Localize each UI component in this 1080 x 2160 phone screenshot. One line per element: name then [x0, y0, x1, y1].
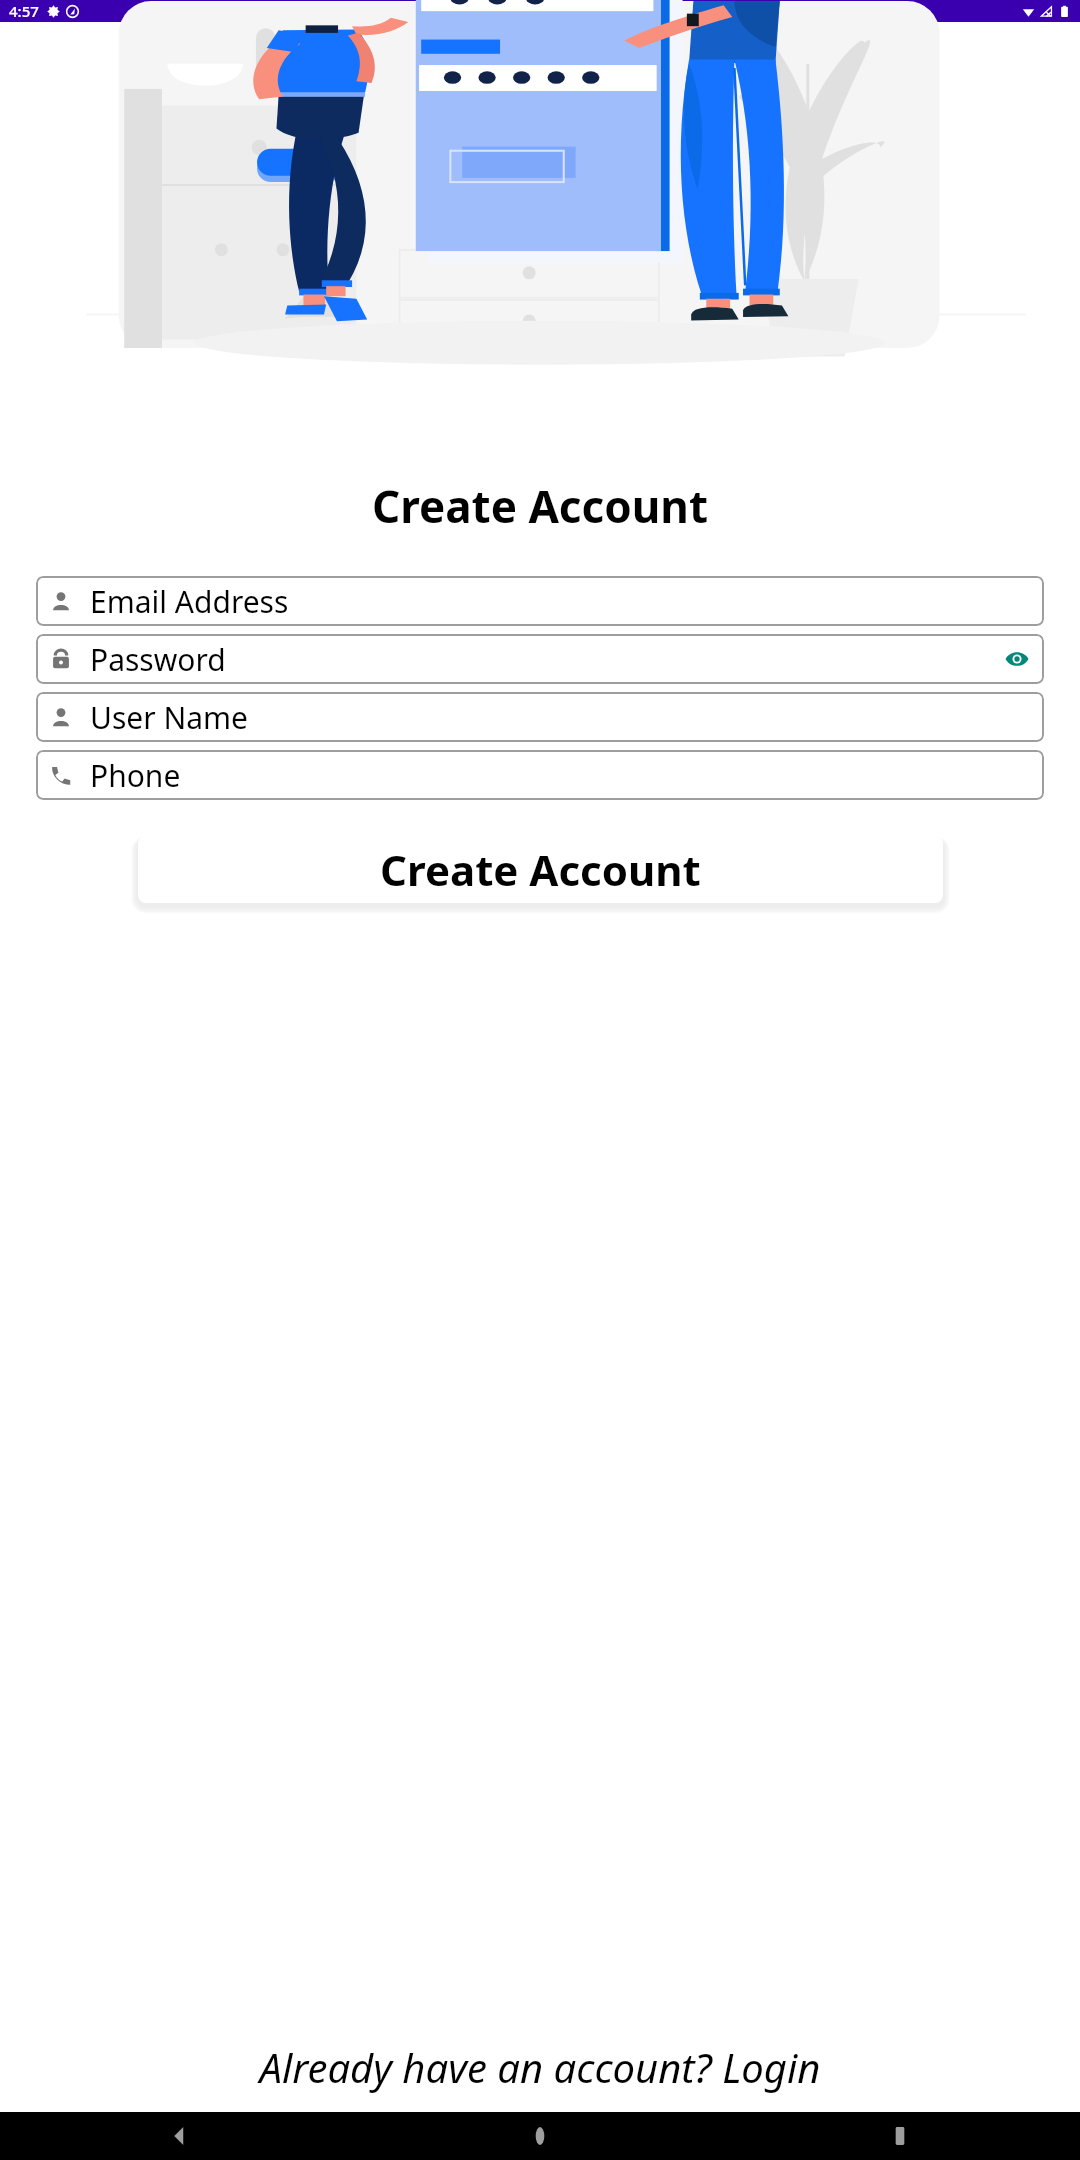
button[interactable]: Password: [36, 634, 1044, 684]
button[interactable]: Create Account: [138, 836, 943, 903]
button[interactable]: Already have an account? Login: [0, 2036, 1080, 2098]
staticText: Email Address: [90, 581, 289, 622]
staticText: Create Account: [0, 476, 1080, 536]
staticText: Create Account: [380, 841, 701, 898]
button[interactable]: Email Address: [36, 576, 1044, 626]
staticText: 4:57: [9, 1, 39, 21]
staticText: Phone: [90, 755, 181, 796]
staticText: Password: [90, 639, 226, 680]
button[interactable]: Home: [360, 2112, 720, 2160]
button[interactable]: Back: [0, 2112, 360, 2160]
button[interactable]: User Name: [36, 692, 1044, 742]
staticText: User Name: [90, 697, 249, 738]
button[interactable]: Recent apps: [720, 2112, 1080, 2160]
button[interactable]: Show password: [1004, 646, 1030, 672]
button[interactable]: Phone: [36, 750, 1044, 800]
